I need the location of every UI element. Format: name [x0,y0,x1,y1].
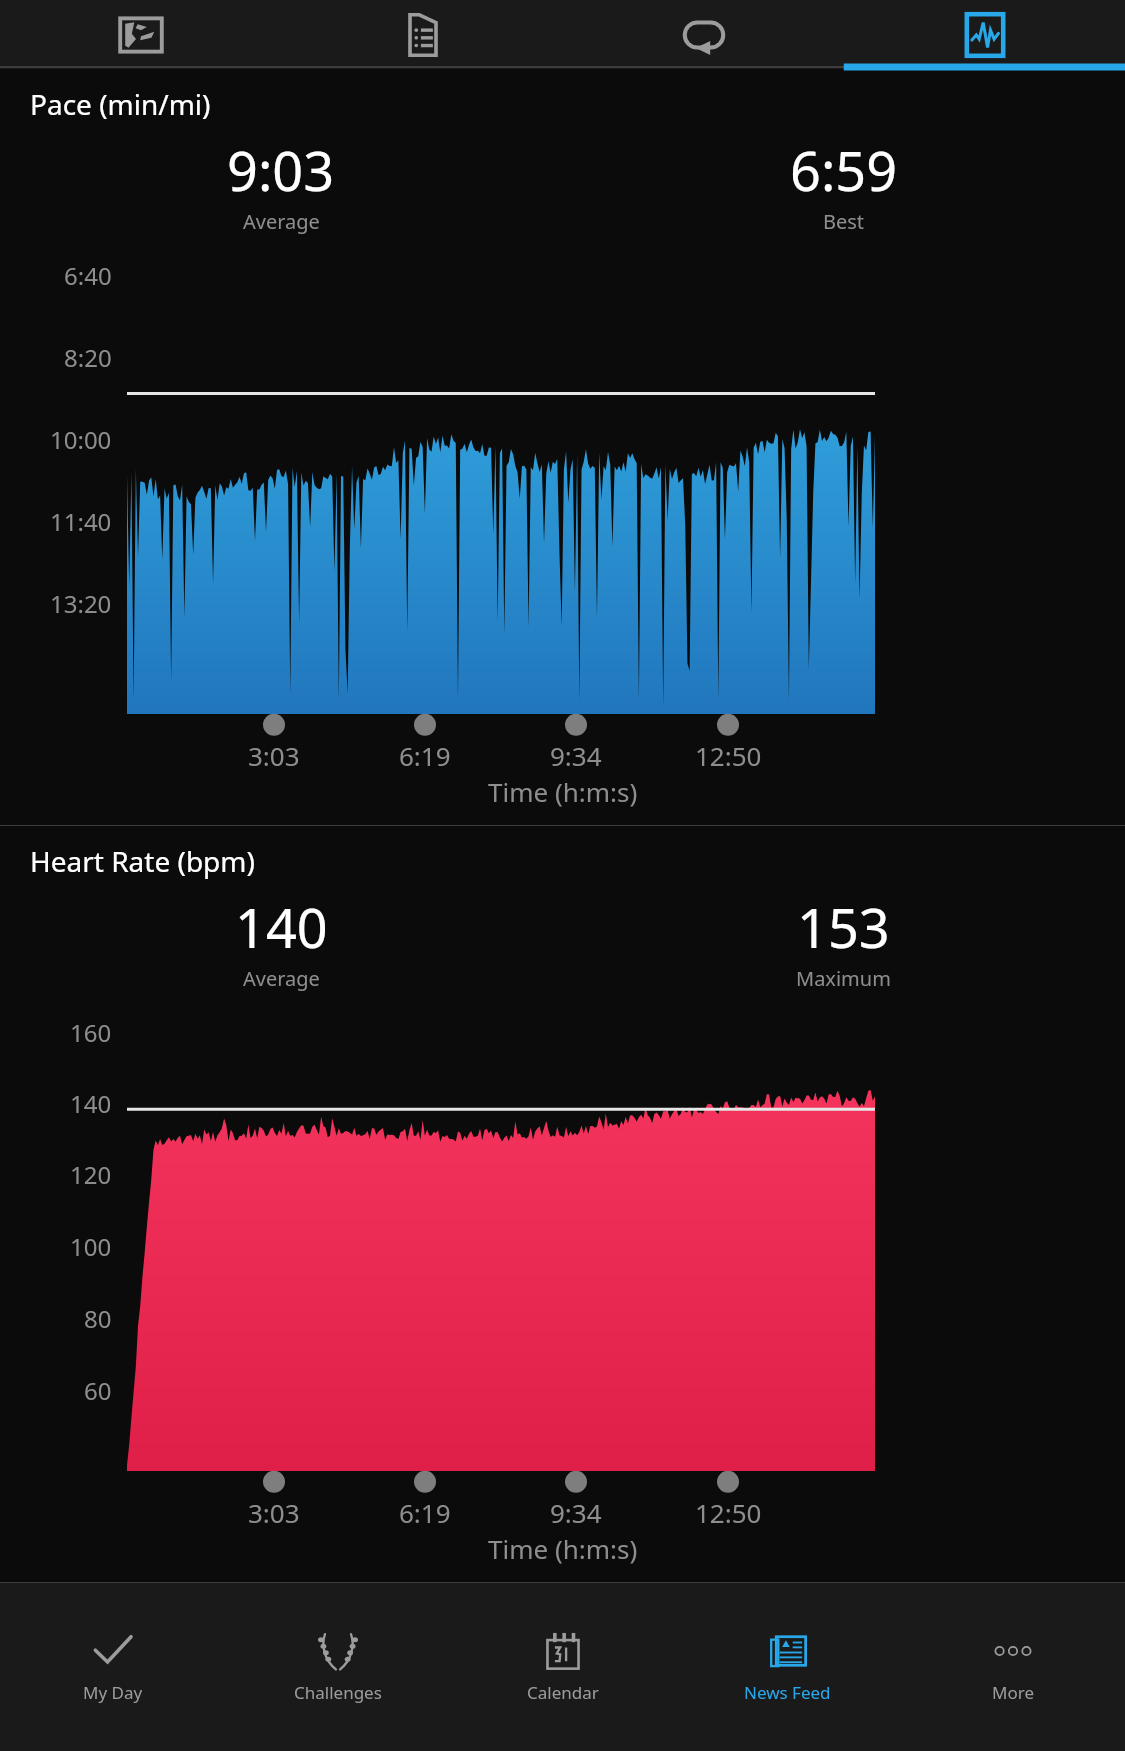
button[interactable]: News Feed [675,1583,900,1751]
staticText: Time (h:m:s) [488,1531,638,1566]
staticText: Challenges [294,1681,382,1704]
staticText: Time (h:m:s) [488,774,638,809]
staticText: Average [243,208,320,235]
staticText: 60 [84,1374,112,1407]
button[interactable]: Calendar [450,1583,675,1751]
button[interactable]: More [900,1583,1125,1751]
button[interactable]: Graphs [844,0,1125,69]
staticText: 3:03 [248,1495,300,1530]
staticText: 6:19 [399,738,451,773]
staticText: 9:34 [550,1495,602,1530]
staticText: Heart Rate (bpm) [30,842,255,880]
staticText: 153 [797,890,890,964]
staticText: 120 [70,1158,112,1191]
button[interactable]: Challenges [225,1583,450,1751]
staticText: More [992,1681,1034,1704]
staticText: 6:40 [64,259,112,292]
staticText: 8:20 [64,341,112,374]
staticText: Best [823,208,865,235]
staticText: 11:40 [50,505,112,538]
staticText: 9:34 [550,738,602,773]
staticText: 140 [70,1087,112,1120]
staticText: 100 [70,1230,112,1263]
staticText: 6:59 [790,133,898,207]
staticText: News Feed [744,1681,831,1704]
staticText: 12:50 [695,1495,762,1530]
staticText: Maximum [796,965,891,992]
staticText: 10:00 [50,423,112,456]
staticText: 3:03 [248,738,300,773]
button[interactable]: My Day [0,1583,225,1751]
staticText: Pace (min/mi) [30,85,211,123]
staticText: 13:20 [50,587,112,620]
staticText: 140 [235,890,328,964]
button[interactable]: Details [282,0,563,69]
staticText: My Day [83,1681,143,1704]
button[interactable]: Map [0,0,282,69]
staticText: 80 [84,1302,112,1335]
staticText: 6:19 [399,1495,451,1530]
staticText: 9:03 [227,133,335,207]
staticText: Calendar [527,1681,599,1704]
staticText: Average [243,965,320,992]
staticText: 160 [70,1016,112,1049]
button[interactable]: Laps [563,0,844,69]
staticText: 12:50 [695,738,762,773]
